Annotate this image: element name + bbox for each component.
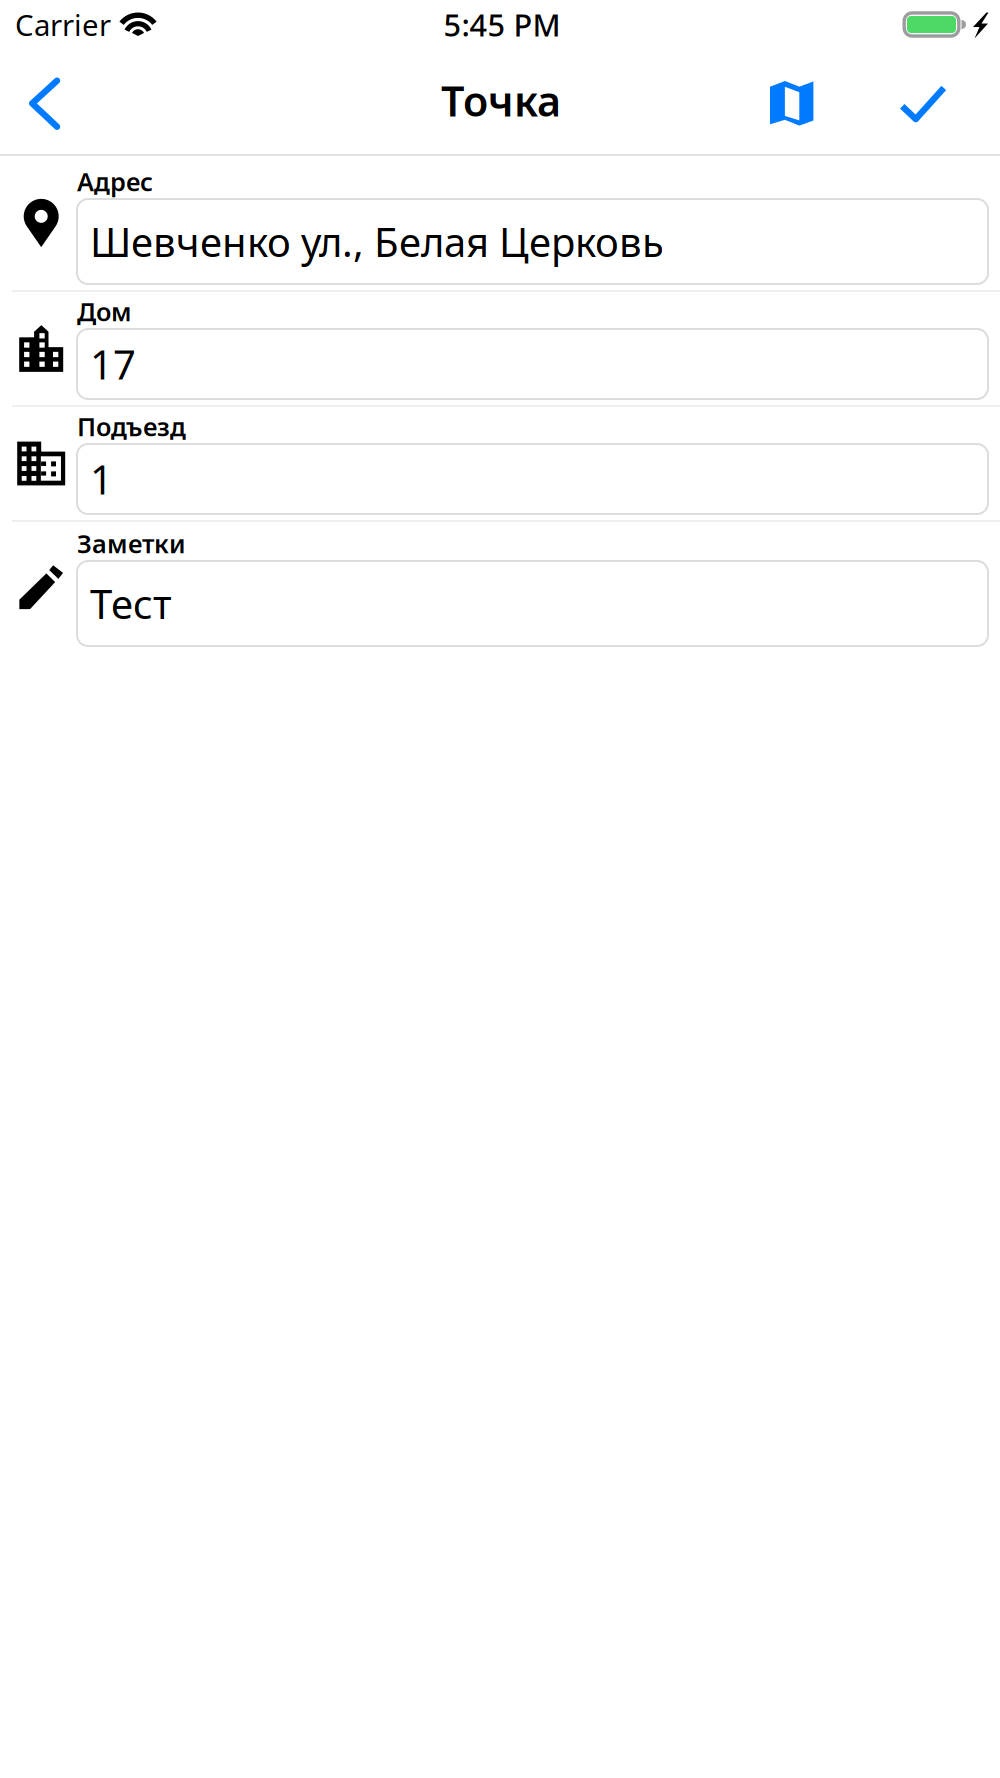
staticText: 1 bbox=[90, 452, 113, 505]
staticText: Точка bbox=[441, 73, 561, 128]
button[interactable]: Подъезд bbox=[0, 407, 1000, 520]
button[interactable]: Back bbox=[0, 53, 89, 154]
staticText: Шевченко ул., Белая Церковь bbox=[90, 215, 664, 268]
staticText: 17 bbox=[90, 337, 136, 390]
staticText: Дом bbox=[77, 295, 132, 328]
button[interactable]: Заметки bbox=[0, 522, 1000, 652]
button[interactable]: Show on map bbox=[742, 53, 842, 154]
button[interactable]: Дом bbox=[0, 292, 1000, 405]
staticText: Адрес bbox=[77, 165, 153, 198]
staticText: Подъезд bbox=[77, 410, 186, 443]
button[interactable]: Адрес bbox=[0, 156, 1000, 290]
staticText: Заметки bbox=[77, 527, 186, 560]
staticText: 5:45 PM bbox=[443, 4, 560, 45]
button[interactable]: Save bbox=[873, 53, 973, 154]
staticText: Carrier bbox=[15, 5, 111, 44]
staticText: Тест bbox=[90, 577, 172, 630]
